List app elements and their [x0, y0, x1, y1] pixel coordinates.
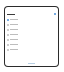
- button[interactable]: [7, 27, 56, 32]
- button[interactable]: [7, 17, 56, 22]
- button[interactable]: [7, 37, 56, 42]
- button[interactable]: [7, 32, 56, 37]
- button[interactable]: [7, 47, 56, 52]
- button[interactable]: [7, 22, 56, 27]
- button[interactable]: [7, 42, 56, 47]
